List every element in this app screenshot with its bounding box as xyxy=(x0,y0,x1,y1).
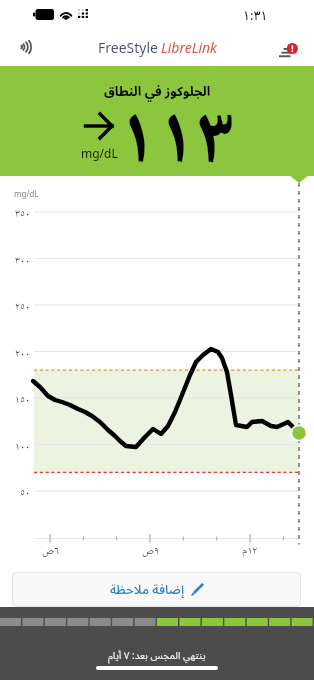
staticText: ١٢م xyxy=(242,542,258,561)
staticText: ٢٥٠ xyxy=(15,298,30,312)
button[interactable]: Menu xyxy=(276,29,312,65)
staticText: ١:٣١ xyxy=(243,6,268,24)
staticText: ينتهي المجس بعد: ٧ أيام xyxy=(108,645,206,666)
staticText: الجلوكوز في النطاق xyxy=(104,78,211,105)
staticText: mg/dL xyxy=(14,188,39,199)
staticText: mg/dL xyxy=(81,145,118,161)
staticText: LibreLink xyxy=(161,38,218,57)
staticText: ١٥٠ xyxy=(15,391,30,405)
staticText: ٦ص xyxy=(42,542,59,561)
staticText: ٥٠ xyxy=(20,484,30,498)
staticText: ٩ص xyxy=(142,542,159,561)
staticText: ١٠٠ xyxy=(15,438,30,452)
staticText: ٣٥٠ xyxy=(15,205,30,219)
staticText: إضافة ملاحظة xyxy=(110,576,185,603)
staticText: FreeStyle xyxy=(98,38,158,57)
staticText: ٢٠٠ xyxy=(15,345,30,359)
staticText: ٣٠٠ xyxy=(15,252,30,266)
staticText: ١١٣ xyxy=(118,76,236,193)
button[interactable]: Scan sensor xyxy=(9,29,45,65)
button[interactable]: إضافة ملاحظة xyxy=(12,572,301,607)
